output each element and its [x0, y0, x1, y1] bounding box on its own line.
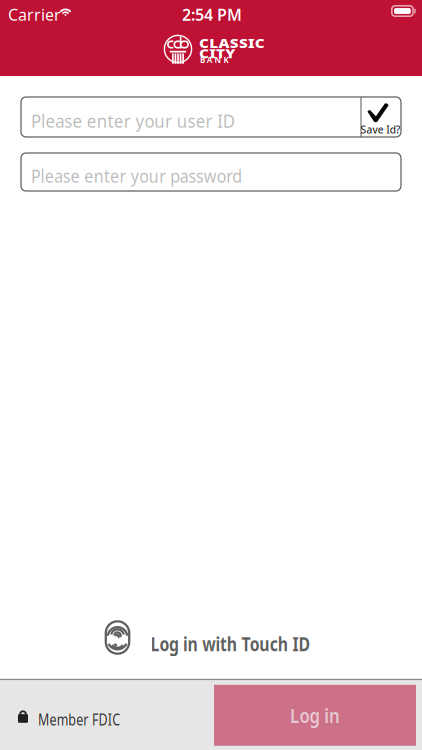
- button[interactable]: Log in: [214, 685, 416, 746]
- staticText: BANK: [200, 54, 228, 65]
- staticText: Save Id?: [360, 122, 406, 138]
- staticText: Log in with Touch ID: [150, 631, 366, 659]
- button[interactable]: Please enter your user ID: [21, 97, 361, 137]
- staticText: Please enter your user ID: [31, 109, 258, 134]
- staticText: Please enter your password: [31, 164, 276, 189]
- staticText: Carrier: [8, 4, 61, 25]
- button[interactable]: Log in with Touch ID: [111, 619, 312, 657]
- button[interactable]: Member FDIC: [20, 701, 130, 731]
- staticText: 2:54 PM: [182, 4, 242, 25]
- button[interactable]: Save Id?: [361, 97, 401, 137]
- staticText: CITY: [199, 46, 231, 64]
- staticText: CLASSIC: [199, 36, 257, 54]
- staticText: Log in: [283, 701, 347, 729]
- staticText: Member FDIC: [38, 709, 152, 732]
- button[interactable]: Please enter your password: [21, 153, 401, 191]
